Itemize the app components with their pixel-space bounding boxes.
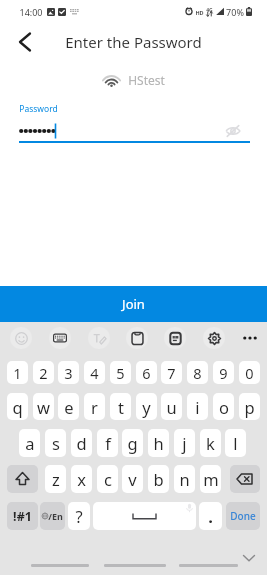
button[interactable]: i	[187, 393, 208, 420]
button[interactable]: l	[225, 429, 246, 457]
staticText: w	[37, 396, 50, 418]
staticText: 9	[219, 363, 228, 383]
button[interactable]: Settings	[203, 327, 225, 349]
button[interactable]: q	[7, 393, 28, 420]
button[interactable]: Hide keyboard	[239, 548, 259, 568]
button[interactable]: Clipboard	[126, 327, 148, 349]
button[interactable]: ?	[68, 502, 90, 530]
staticText: Password	[19, 103, 58, 115]
staticText: 3	[64, 363, 73, 383]
staticText: Enter the Password	[65, 32, 202, 52]
staticText: /En	[48, 510, 63, 522]
staticText: f	[105, 432, 111, 454]
staticText: 14:00	[19, 6, 43, 18]
staticText: c	[104, 468, 112, 490]
staticText: u	[166, 396, 177, 418]
button[interactable]: o	[213, 393, 234, 420]
staticText: b	[153, 468, 164, 490]
button[interactable]: m	[200, 465, 221, 493]
button[interactable]: t	[110, 393, 131, 420]
button[interactable]: Done	[226, 502, 260, 530]
staticText: r	[91, 396, 98, 418]
button[interactable]: 3	[58, 361, 79, 384]
button[interactable]: e	[58, 393, 79, 420]
button[interactable]: b	[148, 465, 169, 493]
staticText: 4G	[206, 7, 213, 14]
button[interactable]: z	[45, 465, 66, 493]
button[interactable]: Space	[93, 502, 196, 530]
button[interactable]: g	[122, 429, 143, 457]
button[interactable]: Show password	[224, 122, 242, 140]
button[interactable]: More options	[239, 327, 261, 349]
button[interactable]: h	[148, 429, 169, 457]
staticText: q	[12, 396, 23, 418]
button[interactable]: j	[174, 429, 195, 457]
staticText: HD	[195, 9, 204, 16]
staticText: 7	[167, 363, 176, 383]
staticText: 8	[193, 363, 202, 383]
staticText: 1	[13, 363, 22, 383]
staticText: j	[182, 432, 187, 454]
button[interactable]: c	[97, 465, 118, 493]
staticText: k	[206, 432, 215, 454]
staticText: !#1	[13, 508, 32, 525]
staticText: d	[76, 432, 87, 454]
staticText: n	[179, 468, 190, 490]
button[interactable]: 1	[7, 361, 28, 384]
button[interactable]: 5	[110, 361, 131, 384]
staticText: x	[77, 468, 86, 490]
button[interactable]: k	[200, 429, 221, 457]
button[interactable]: v	[122, 465, 143, 493]
staticText: 4	[90, 363, 99, 383]
button[interactable]: r	[84, 393, 105, 420]
button[interactable]: 0	[239, 361, 260, 384]
button[interactable]: f	[97, 429, 118, 457]
staticText: .	[208, 505, 213, 527]
staticText: 6	[142, 363, 151, 383]
button[interactable]: Change language	[40, 502, 65, 530]
staticText: p	[244, 396, 255, 418]
staticText: v	[128, 468, 137, 490]
button[interactable]: 7	[161, 361, 182, 384]
button[interactable]: Text templates	[164, 327, 186, 349]
button[interactable]: 2	[33, 361, 54, 384]
staticText: 0	[245, 363, 254, 383]
staticText: 70%	[226, 6, 244, 18]
staticText: s	[52, 432, 60, 454]
button[interactable]: Back	[11, 28, 39, 56]
button[interactable]: Shift	[7, 465, 38, 493]
button[interactable]: p	[239, 393, 260, 420]
button[interactable]: w	[33, 393, 54, 420]
staticText: 2	[39, 363, 48, 383]
button[interactable]: x	[71, 465, 92, 493]
staticText: a	[25, 432, 35, 454]
button[interactable]: Keyboard	[49, 327, 71, 349]
button[interactable]: s	[45, 429, 66, 457]
staticText: i	[195, 396, 200, 418]
staticText: l	[233, 432, 238, 454]
staticText: e	[64, 396, 74, 418]
button[interactable]: 4	[84, 361, 105, 384]
button[interactable]: Handwriting	[88, 327, 110, 349]
button[interactable]: y	[136, 393, 157, 420]
staticText: y	[142, 396, 151, 418]
button[interactable]: n	[174, 465, 195, 493]
button[interactable]: Emoji	[10, 327, 32, 349]
button[interactable]: d	[71, 429, 92, 457]
staticText: ?	[75, 505, 83, 527]
button[interactable]: 6	[136, 361, 157, 384]
button[interactable]: u	[161, 393, 182, 420]
staticText: h	[153, 432, 164, 454]
staticText: z	[52, 468, 60, 490]
staticText: Done	[230, 509, 256, 523]
button[interactable]: 9	[213, 361, 234, 384]
button[interactable]: !#1	[7, 502, 38, 530]
button[interactable]: a	[19, 429, 40, 457]
button[interactable]: Join	[0, 286, 267, 322]
staticText: 5	[116, 363, 125, 383]
button[interactable]: 8	[187, 361, 208, 384]
staticText: m	[203, 468, 219, 490]
button[interactable]: Backspace	[230, 465, 260, 493]
staticText: Join	[122, 295, 145, 313]
button[interactable]: .	[199, 502, 222, 530]
